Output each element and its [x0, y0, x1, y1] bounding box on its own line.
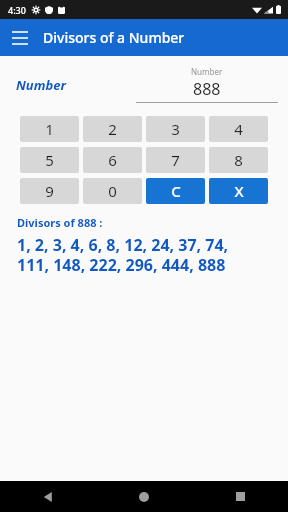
staticText: 7 [171, 150, 180, 170]
staticText: Divisors of 888 : [17, 215, 103, 230]
button[interactable]: 9 [20, 178, 79, 204]
button[interactable]: C [146, 178, 205, 204]
button[interactable]: Number [136, 66, 278, 103]
button[interactable]: X [209, 178, 268, 204]
button[interactable]: 4 [209, 116, 268, 142]
staticText: 4 [234, 119, 243, 139]
staticText: Number [191, 66, 223, 77]
button[interactable]: 8 [209, 147, 268, 173]
staticText: 8 [234, 150, 243, 170]
button[interactable]: 6 [83, 147, 142, 173]
staticText: 6 [108, 150, 117, 170]
staticText: 1, 2, 3, 4, 6, 8, 12, 24, 37, 74, 111, 1… [17, 234, 229, 275]
button[interactable]: 3 [146, 116, 205, 142]
staticText: 0 [108, 181, 117, 201]
button[interactable]: 7 [146, 147, 205, 173]
staticText: 9 [45, 181, 54, 201]
staticText: Divisors of a Number [43, 28, 185, 47]
button[interactable]: 2 [83, 116, 142, 142]
button[interactable]: Recent apps [192, 481, 288, 512]
staticText: X [234, 181, 244, 201]
staticText: 5 [45, 150, 54, 170]
button[interactable]: 5 [20, 147, 79, 173]
button[interactable]: Back [0, 481, 96, 512]
button[interactable]: 1 [20, 116, 79, 142]
staticText: 3 [171, 119, 180, 139]
staticText: Number [16, 76, 66, 94]
staticText: 888 [193, 78, 221, 100]
button[interactable]: Open navigation menu [8, 26, 32, 50]
button[interactable]: Home [96, 481, 192, 512]
button[interactable]: 0 [83, 178, 142, 204]
staticText: 2 [108, 119, 117, 139]
staticText: 4:30 [8, 4, 26, 16]
staticText: C [171, 181, 181, 201]
staticText: 1 [45, 119, 54, 139]
